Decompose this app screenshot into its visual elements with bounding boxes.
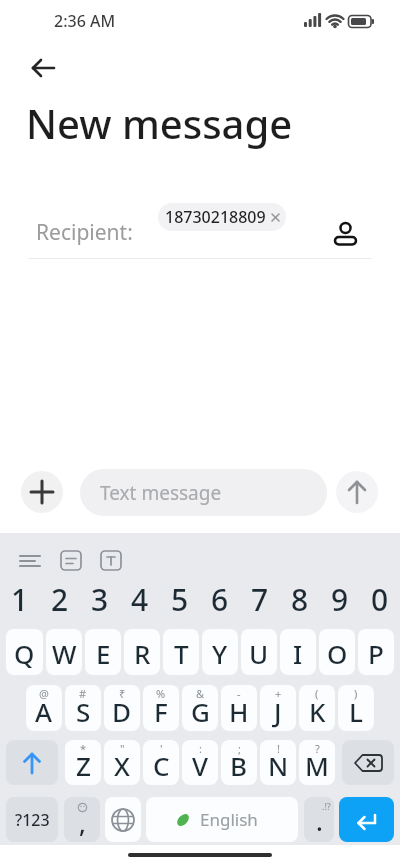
staticText: G (191, 694, 210, 729)
staticText: L (349, 694, 363, 729)
staticText: & (196, 686, 205, 701)
button[interactable]: 1 (0, 577, 40, 617)
button[interactable]: 7 (240, 577, 280, 617)
button[interactable]: I (280, 629, 316, 675)
button[interactable]: , (64, 797, 100, 842)
button[interactable]: @ (26, 685, 62, 731)
button[interactable] (339, 797, 394, 842)
button[interactable]: ?123 (6, 797, 58, 842)
button[interactable]: P (358, 629, 394, 675)
staticText: H (229, 694, 249, 729)
staticText: P (368, 636, 384, 671)
button[interactable]: ₹ (104, 685, 140, 731)
button[interactable]: R (124, 629, 160, 675)
staticText: Text message (100, 480, 222, 506)
button[interactable] (21, 471, 63, 513)
button[interactable]: ) (338, 685, 374, 731)
staticText: 0 (371, 579, 389, 619)
button[interactable] (14, 545, 46, 577)
staticText: C (153, 748, 170, 783)
button[interactable]: .!? (304, 797, 334, 842)
button[interactable]: ' (143, 740, 179, 785)
button[interactable]: 6 (200, 577, 240, 617)
button[interactable]: 2 (40, 577, 80, 617)
button[interactable] (55, 545, 87, 577)
button[interactable]: Y (202, 629, 238, 675)
staticText: 3 (91, 579, 109, 619)
staticText: .!? (322, 800, 331, 812)
staticText: ) (354, 686, 358, 701)
button[interactable] (336, 471, 378, 513)
button[interactable]: " (104, 740, 140, 785)
button[interactable]: ( (299, 685, 335, 731)
button[interactable]: Q (6, 629, 43, 675)
button[interactable]: O (319, 629, 355, 675)
button[interactable]: & (182, 685, 218, 731)
button[interactable]: * (65, 740, 101, 785)
staticText: 2:36 AM (54, 10, 116, 32)
button[interactable]: : (182, 740, 218, 785)
staticText: O (327, 636, 348, 671)
button[interactable]: E (85, 629, 121, 675)
button[interactable]: T (163, 629, 199, 675)
staticText: Recipient: (36, 218, 133, 247)
staticText: U (249, 636, 269, 671)
button[interactable] (342, 740, 394, 785)
button[interactable]: ; (221, 740, 257, 785)
staticText: @ (39, 686, 49, 701)
staticText: E (96, 636, 111, 671)
staticText: + (275, 686, 282, 701)
button[interactable]: ! (260, 740, 296, 785)
staticText: D (112, 694, 132, 729)
staticText: , (79, 806, 86, 840)
staticText: R (134, 636, 151, 671)
button[interactable]: # (65, 685, 101, 731)
button[interactable]: 8 (280, 577, 320, 617)
staticText: F (154, 694, 168, 729)
button[interactable]: 18730218809 (158, 203, 286, 231)
staticText: ₹ (119, 686, 126, 701)
button[interactable]: 9 (320, 577, 360, 617)
button[interactable]: W (46, 629, 82, 675)
button[interactable]: + (260, 685, 296, 731)
button[interactable] (95, 545, 127, 577)
staticText: ( (315, 686, 319, 701)
button[interactable]: - (221, 685, 257, 731)
staticText: 5 (171, 579, 189, 619)
button[interactable]: ? (299, 740, 335, 785)
staticText: Y (212, 636, 228, 671)
staticText: S (76, 694, 91, 729)
button[interactable]: 3 (80, 577, 120, 617)
staticText: M (305, 748, 329, 783)
staticText: X (114, 748, 130, 783)
staticText: ?123 (15, 809, 50, 831)
staticText: 2 (51, 579, 69, 619)
button[interactable]: % (143, 685, 179, 731)
button[interactable]: Text message (80, 469, 327, 516)
staticText: 18730218809 (165, 206, 266, 228)
staticText: " (120, 741, 125, 756)
button[interactable] (24, 50, 64, 86)
button[interactable] (6, 740, 58, 785)
staticText: New message (26, 96, 293, 150)
staticText: * (80, 741, 87, 756)
button[interactable]: 4 (120, 577, 160, 617)
staticText: V (192, 748, 208, 783)
staticText: # (79, 686, 87, 701)
staticText: Z (76, 748, 91, 783)
staticText: J (274, 694, 282, 729)
button[interactable]: English (146, 797, 298, 842)
staticText: W (52, 636, 77, 671)
staticText: 7 (251, 579, 269, 619)
button[interactable]: U (241, 629, 277, 675)
staticText: B (230, 748, 248, 783)
button[interactable] (328, 212, 362, 250)
staticText: . (316, 804, 323, 838)
staticText: Q (14, 636, 35, 671)
staticText: 4 (131, 579, 149, 619)
button[interactable] (105, 797, 141, 842)
staticText: N (268, 748, 289, 783)
button[interactable]: 0 (360, 577, 400, 617)
staticText: 8 (291, 579, 309, 619)
button[interactable]: 5 (160, 577, 200, 617)
